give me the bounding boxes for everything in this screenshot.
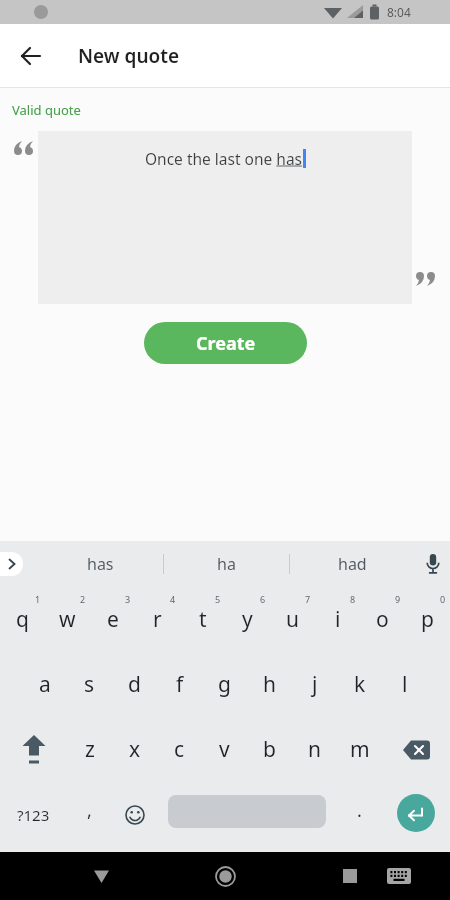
button[interactable] xyxy=(375,852,423,900)
button[interactable]: e xyxy=(90,587,135,652)
button[interactable] xyxy=(201,852,249,900)
staticText: 6 xyxy=(260,593,266,605)
button[interactable]: b xyxy=(247,717,292,782)
button[interactable]: c xyxy=(157,717,202,782)
button[interactable]: z xyxy=(67,717,112,782)
button[interactable] xyxy=(415,541,450,587)
button[interactable]: r xyxy=(135,587,180,652)
staticText: l xyxy=(402,670,408,699)
button[interactable]: f xyxy=(157,652,202,717)
button[interactable] xyxy=(0,24,44,88)
button[interactable] xyxy=(112,782,157,847)
button[interactable]: s xyxy=(67,652,112,717)
button[interactable]: Once the last one has xyxy=(38,131,412,304)
button[interactable]: o xyxy=(360,587,405,652)
button[interactable] xyxy=(382,782,450,847)
button[interactable] xyxy=(0,552,23,576)
button[interactable]: g xyxy=(202,652,247,717)
staticText: Create xyxy=(196,331,256,356)
staticText: e xyxy=(107,605,119,634)
staticText: o xyxy=(376,605,389,634)
staticText: j xyxy=(312,670,318,699)
button[interactable]: ha xyxy=(164,541,289,587)
button[interactable] xyxy=(77,852,125,900)
staticText: g xyxy=(218,670,231,699)
staticText: d xyxy=(128,670,141,699)
staticText: q xyxy=(16,605,29,634)
staticText: 4 xyxy=(170,593,176,605)
staticText: ?123 xyxy=(17,805,50,825)
staticText: 8:04 xyxy=(387,4,411,20)
staticText: 5 xyxy=(215,593,221,605)
staticText: h xyxy=(263,670,276,699)
staticText: 3 xyxy=(125,593,131,605)
button[interactable]: ?123 xyxy=(0,782,67,847)
staticText: z xyxy=(85,735,95,764)
staticText: n xyxy=(308,735,321,764)
button[interactable]: Create xyxy=(144,322,307,364)
button[interactable]: v xyxy=(202,717,247,782)
button[interactable]: u xyxy=(270,587,315,652)
staticText: y xyxy=(242,605,253,634)
staticText: New quote xyxy=(78,43,180,69)
button[interactable]: j xyxy=(292,652,337,717)
staticText: 1 xyxy=(35,593,41,605)
button[interactable]: l xyxy=(382,652,427,717)
staticText: u xyxy=(286,605,299,634)
staticText: b xyxy=(263,735,276,764)
button[interactable] xyxy=(382,717,450,782)
staticText: v xyxy=(219,735,230,764)
button[interactable]: m xyxy=(337,717,382,782)
staticText: t xyxy=(199,605,207,634)
staticText: w xyxy=(59,605,76,634)
button[interactable]: n xyxy=(292,717,337,782)
staticText: c xyxy=(174,735,185,764)
button[interactable]: has xyxy=(37,541,163,587)
button[interactable]: t xyxy=(180,587,225,652)
button[interactable]: h xyxy=(247,652,292,717)
button[interactable]: p xyxy=(405,587,450,652)
button[interactable]: k xyxy=(337,652,382,717)
staticText: Valid quote xyxy=(12,101,81,119)
staticText: ha xyxy=(217,553,236,575)
button[interactable]: q xyxy=(0,587,45,652)
staticText: m xyxy=(350,735,370,764)
staticText: 2 xyxy=(80,593,86,605)
staticText: s xyxy=(84,670,95,699)
button[interactable]: y xyxy=(225,587,270,652)
staticText: a xyxy=(39,670,51,699)
staticText: k xyxy=(354,670,366,699)
button[interactable]: d xyxy=(112,652,157,717)
button[interactable] xyxy=(326,852,374,900)
staticText: has xyxy=(87,553,114,575)
button[interactable]: , xyxy=(67,782,112,847)
staticText: p xyxy=(421,605,434,634)
button[interactable] xyxy=(157,782,337,847)
staticText: , xyxy=(87,798,92,823)
button[interactable]: had xyxy=(290,541,415,587)
button[interactable]: a xyxy=(22,652,67,717)
staticText: had xyxy=(338,553,367,575)
staticText: 9 xyxy=(395,593,401,605)
button[interactable]: w xyxy=(45,587,90,652)
staticText: . xyxy=(357,798,362,823)
staticText: 7 xyxy=(305,593,311,605)
button[interactable]: . xyxy=(337,782,382,847)
staticText: f xyxy=(176,670,184,699)
button[interactable]: i xyxy=(315,587,360,652)
button[interactable] xyxy=(0,717,67,782)
staticText: 0 xyxy=(440,593,446,605)
staticText: 8 xyxy=(350,593,356,605)
staticText: r xyxy=(153,605,162,634)
button[interactable]: x xyxy=(112,717,157,782)
staticText: Once the last one has xyxy=(145,148,303,169)
staticText: x xyxy=(129,735,141,764)
staticText: i xyxy=(335,605,341,634)
